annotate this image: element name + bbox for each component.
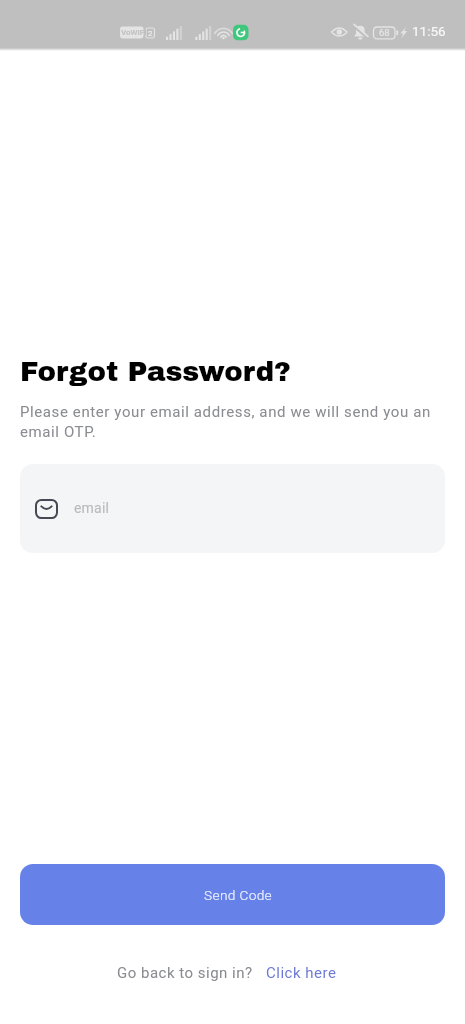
staticText: VoWIFI xyxy=(121,28,147,37)
staticText: 68 xyxy=(379,27,390,38)
button[interactable]: Send Code xyxy=(20,864,445,925)
staticText: 2 xyxy=(148,29,153,38)
button[interactable]: Email xyxy=(20,464,445,553)
staticText: Please enter your email address, and we … xyxy=(20,403,438,441)
staticText: 11:56 xyxy=(412,23,446,39)
staticText: Forgot Password? xyxy=(20,357,292,387)
staticText: Click here xyxy=(266,964,337,982)
staticText: Send Code xyxy=(204,887,273,903)
other: Email xyxy=(35,499,58,519)
staticText: email xyxy=(74,500,110,516)
button[interactable]: Click here xyxy=(266,964,337,982)
staticText: Go back to sign in? xyxy=(117,964,253,982)
